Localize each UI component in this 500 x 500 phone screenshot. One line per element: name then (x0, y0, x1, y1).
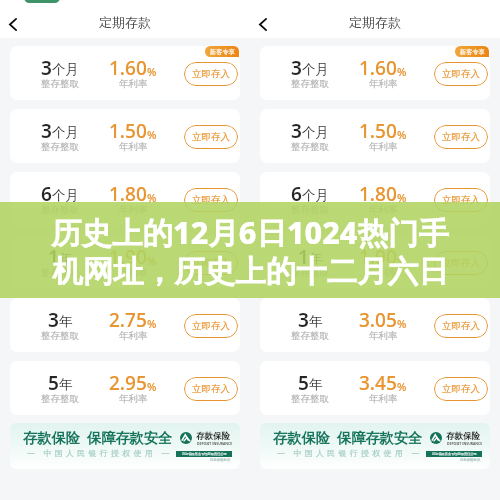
button[interactable]: 立即存入 (184, 314, 238, 338)
staticText: % (147, 316, 157, 331)
button[interactable]: Back (252, 12, 274, 37)
button[interactable]: 3 (10, 46, 240, 100)
staticText: 立即存入 (442, 68, 480, 80)
staticText: 存款保险 (196, 431, 230, 442)
staticText: 1 (48, 244, 59, 270)
button[interactable]: 立即存入 (184, 188, 238, 212)
staticText: 整存整取 (291, 141, 329, 153)
staticText: 立即存入 (192, 320, 230, 332)
staticText: 立即存入 (192, 68, 230, 80)
staticText: 整存整取 (291, 78, 329, 90)
staticText: 整存整取 (41, 267, 79, 279)
button[interactable]: 立即存入 (434, 251, 488, 275)
staticText: 存款保险标识 (460, 458, 481, 462)
staticText: 年利率 (369, 393, 398, 405)
staticText: % (147, 253, 157, 268)
staticText: 1.90 (109, 244, 147, 270)
staticText: 个月 (52, 61, 79, 78)
button[interactable]: 立即存入 (434, 314, 488, 338)
button[interactable]: 立即存入 (434, 125, 488, 149)
staticText: % (397, 190, 407, 205)
button[interactable]: 1 (10, 235, 240, 289)
button[interactable]: 6 (10, 172, 240, 226)
staticText: 5 (298, 370, 309, 396)
button[interactable]: 立即存入 (184, 251, 238, 275)
staticText: 立即存入 (192, 131, 230, 143)
staticText: % (397, 253, 407, 268)
staticText: — 中国人民银行授权使用 — (277, 447, 423, 458)
button[interactable]: 3 (260, 298, 490, 352)
staticText: 1.50 (109, 118, 147, 144)
staticText: 整存整取 (41, 393, 79, 405)
staticText: 1.80 (109, 181, 147, 207)
button[interactable]: Back (2, 12, 24, 37)
staticText: 年利率 (119, 330, 148, 342)
staticText: 保障存款安全 (87, 429, 173, 447)
staticText: 新客专享 (210, 48, 235, 56)
staticText: 立即存入 (442, 320, 480, 332)
staticText: 存款保险标识 (210, 458, 231, 462)
button[interactable]: 6 (260, 172, 490, 226)
staticText: 3 (41, 55, 52, 81)
staticText: 机网址，历史上的十二月六日 (52, 253, 449, 291)
button[interactable]: 立即存入 (434, 377, 488, 401)
staticText: 年利率 (119, 78, 148, 90)
staticText: 年利率 (119, 393, 148, 405)
button[interactable]: 3 (260, 46, 490, 100)
staticText: 整存整取 (41, 330, 79, 342)
staticText: 个月 (52, 187, 79, 204)
staticText: 2.75 (109, 307, 147, 333)
button[interactable]: 立即存入 (434, 188, 488, 212)
button[interactable]: 3 (10, 109, 240, 163)
staticText: % (147, 379, 157, 394)
staticText: 3 (291, 118, 302, 144)
staticText: 整存整取 (291, 393, 329, 405)
staticText: 3 (298, 307, 309, 333)
staticText: 1.90 (359, 244, 397, 270)
button[interactable]: 1 (260, 235, 490, 289)
staticText: 3.05 (359, 307, 397, 333)
staticText: 3.45 (359, 370, 397, 396)
button[interactable]: 5 (260, 361, 490, 415)
staticText: 年利率 (369, 267, 398, 279)
staticText: 存款保险 (273, 429, 330, 447)
staticText: % (397, 379, 407, 394)
staticText: 立即存入 (192, 383, 230, 395)
staticText: 年 (309, 250, 323, 267)
button[interactable]: 立即存入 (184, 377, 238, 401)
button[interactable]: 5 (10, 361, 240, 415)
button[interactable]: 立即存入 (434, 62, 488, 86)
staticText: 1.60 (109, 55, 147, 81)
staticText: 存款保险 (446, 431, 480, 442)
staticText: 1.50 (359, 118, 397, 144)
staticText: 6 (291, 181, 302, 207)
staticText: — 中国人民银行授权使用 — (27, 447, 173, 458)
staticText: 3 (41, 118, 52, 144)
staticText: % (397, 64, 407, 79)
button[interactable]: 立即存入 (184, 125, 238, 149)
button[interactable]: 3 (10, 298, 240, 352)
staticText: 整存整取 (291, 267, 329, 279)
staticText: 年 (59, 313, 73, 330)
staticText: 年利率 (369, 78, 398, 90)
staticText: % (397, 127, 407, 142)
staticText: 年利率 (369, 330, 398, 342)
staticText: 年 (309, 376, 323, 393)
staticText: 1.60 (359, 55, 397, 81)
staticText: 个月 (302, 187, 329, 204)
staticText: 整存整取 (41, 141, 79, 153)
staticText: 立即存入 (442, 194, 480, 206)
button[interactable]: 3 (260, 109, 490, 163)
staticText: 立即存入 (192, 194, 230, 206)
staticText: 个月 (302, 124, 329, 141)
staticText: 立即存入 (442, 383, 480, 395)
staticText: 6 (41, 181, 52, 207)
staticText: 年利率 (119, 267, 148, 279)
staticText: 年利率 (369, 141, 398, 153)
staticText: 历史上的12月6日1024热门手 (51, 211, 449, 253)
button[interactable]: 立即存入 (184, 62, 238, 86)
